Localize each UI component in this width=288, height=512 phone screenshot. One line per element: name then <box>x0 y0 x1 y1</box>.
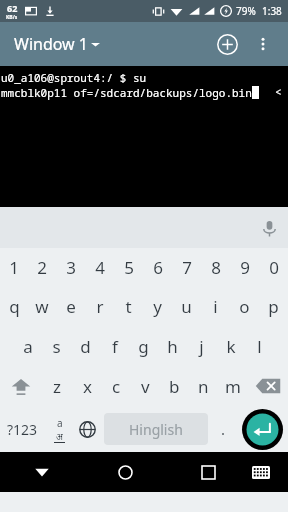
button[interactable]: Home <box>105 452 145 492</box>
staticText: z <box>53 375 61 398</box>
button[interactable]: 5 <box>114 248 143 287</box>
staticText: Window 1 <box>14 33 88 55</box>
button[interactable]: 0 <box>259 248 288 287</box>
staticText: 3 <box>66 256 76 279</box>
button[interactable]: Voice input <box>250 209 288 247</box>
staticText: w <box>35 295 49 318</box>
button[interactable]: Recent apps <box>188 452 228 492</box>
staticText: o <box>239 295 250 318</box>
button[interactable]: g <box>129 326 158 366</box>
button[interactable]: 9 <box>230 248 259 287</box>
staticText: 8 <box>211 256 221 279</box>
button[interactable]: 4 <box>85 248 114 287</box>
staticText: KB/s <box>6 14 18 21</box>
button[interactable]: 2 <box>28 248 56 287</box>
staticText: 62 <box>7 2 18 14</box>
staticText: . <box>221 419 226 439</box>
staticText: k <box>226 335 236 358</box>
staticText: s <box>52 335 61 358</box>
button[interactable]: Window 1 <box>12 27 102 61</box>
button[interactable]: u <box>172 287 201 326</box>
staticText: f <box>112 335 118 358</box>
button[interactable]: n <box>189 366 218 406</box>
button[interactable]: Switch language <box>45 406 73 452</box>
button[interactable]: v <box>131 366 160 406</box>
button[interactable]: 3 <box>56 248 85 287</box>
button[interactable]: Hide keyboard <box>243 454 279 490</box>
button[interactable]: x <box>72 366 102 406</box>
staticText: g <box>138 335 149 358</box>
button[interactable]: q <box>0 287 28 326</box>
button[interactable]: p <box>259 287 288 326</box>
staticText: r <box>96 295 104 318</box>
staticText: 2 <box>37 256 47 279</box>
staticText: m <box>225 375 241 398</box>
staticText: l <box>257 335 262 358</box>
staticText: a <box>23 335 33 358</box>
button[interactable]: Shift <box>0 366 42 406</box>
button[interactable]: Backspace <box>247 366 288 406</box>
staticText: y <box>153 295 162 318</box>
staticText: 79% <box>236 4 256 18</box>
staticText: 1 <box>9 256 19 279</box>
staticText: 0 <box>269 256 279 279</box>
button[interactable]: . <box>211 406 236 452</box>
staticText: < <box>275 84 282 99</box>
staticText: c <box>112 375 121 398</box>
button[interactable]: u0_a106@sprout4:/ $ su <box>0 66 288 207</box>
button[interactable]: m <box>218 366 247 406</box>
button[interactable]: t <box>114 287 143 326</box>
staticText: j <box>199 335 204 358</box>
staticText: अ <box>56 430 63 442</box>
button[interactable]: 8 <box>201 248 230 287</box>
button[interactable]: e <box>56 287 85 326</box>
button[interactable]: ?123 <box>0 406 45 452</box>
button[interactable]: a <box>14 326 42 366</box>
staticText: 6 <box>153 256 163 279</box>
button[interactable]: Input languages <box>73 406 101 452</box>
button[interactable]: r <box>85 287 114 326</box>
staticText: ?123 <box>7 420 38 439</box>
staticText: u <box>181 295 192 318</box>
staticText: 9 <box>240 256 250 279</box>
button[interactable]: Back <box>22 452 62 492</box>
button[interactable]: j <box>187 326 216 366</box>
button[interactable]: w <box>28 287 56 326</box>
button[interactable]: 1 <box>0 248 28 287</box>
staticText: u0_a106@sprout4:/ $ su <box>1 70 147 85</box>
button[interactable]: o <box>230 287 259 326</box>
button[interactable]: New window <box>210 27 244 61</box>
staticText: p <box>268 295 279 318</box>
button[interactable]: i <box>201 287 230 326</box>
staticText: x <box>83 375 92 398</box>
staticText: e <box>66 295 76 318</box>
staticText: b <box>169 375 180 398</box>
button[interactable]: f <box>100 326 129 366</box>
button[interactable]: b <box>160 366 189 406</box>
button[interactable]: More options <box>248 29 278 59</box>
staticText: i <box>213 295 218 318</box>
button[interactable]: 7 <box>172 248 201 287</box>
staticText: 5 <box>124 256 134 279</box>
button[interactable]: h <box>158 326 187 366</box>
staticText: Hinglish <box>129 420 183 439</box>
button[interactable]: l <box>245 326 274 366</box>
staticText: 7 <box>182 256 192 279</box>
staticText: a <box>57 416 63 430</box>
button[interactable]: d <box>71 326 100 366</box>
staticText: d <box>80 335 91 358</box>
button[interactable]: k <box>216 326 245 366</box>
staticText: h <box>167 335 178 358</box>
staticText: q <box>9 295 20 318</box>
staticText: 4 <box>95 256 105 279</box>
button[interactable]: Enter <box>236 406 288 452</box>
staticText: n <box>198 375 209 398</box>
button[interactable]: c <box>102 366 131 406</box>
button[interactable]: y <box>143 287 172 326</box>
staticText: v <box>141 375 150 398</box>
staticText: mmcblk0p11 of=/sdcard/backups/logo.bin <box>1 85 252 100</box>
button[interactable]: 6 <box>143 248 172 287</box>
button[interactable]: s <box>42 326 71 366</box>
button[interactable]: z <box>42 366 72 406</box>
button[interactable]: Hinglish <box>104 413 208 445</box>
